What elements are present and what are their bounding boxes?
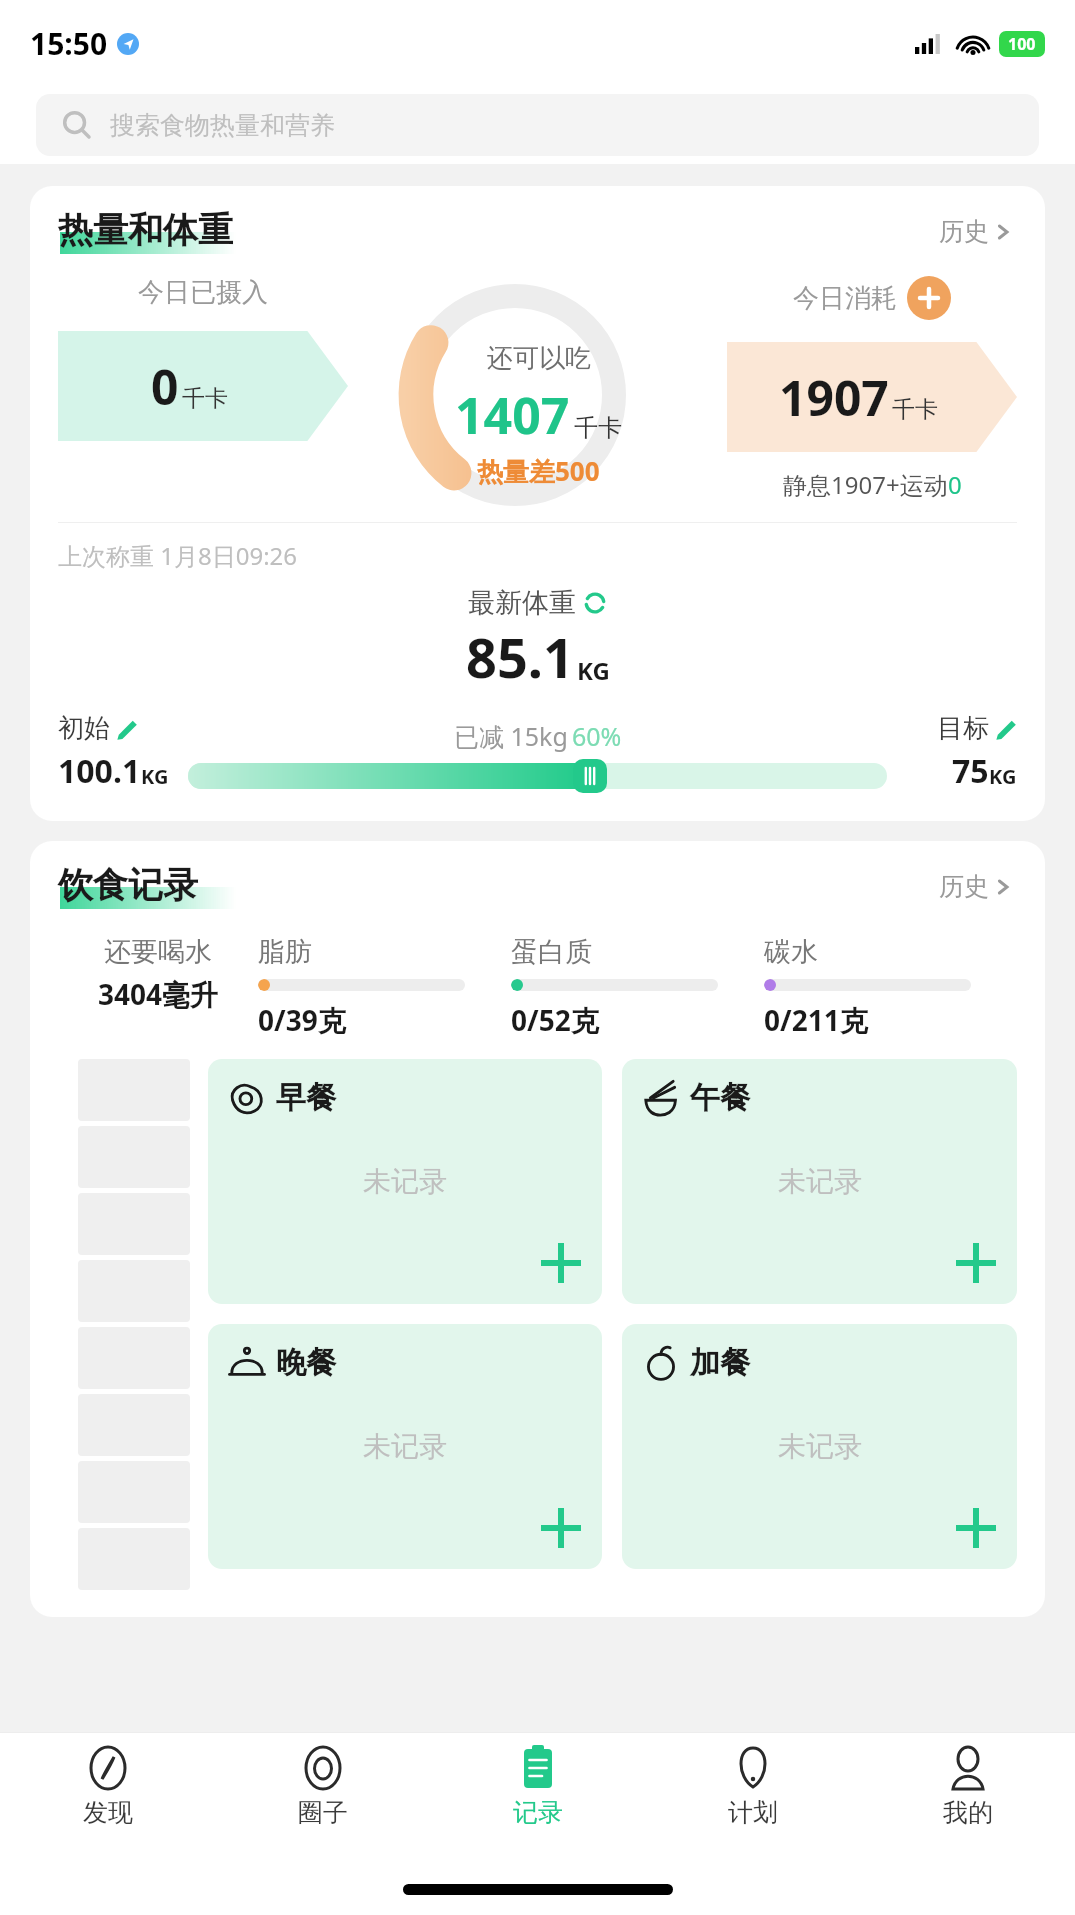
staticText: 目标 <box>937 712 989 745</box>
staticText: KG <box>989 763 1017 790</box>
button[interactable]: 添加消耗 <box>907 276 951 320</box>
staticText: 初始 <box>58 712 110 745</box>
staticText: 3404毫升 <box>98 975 219 1013</box>
staticText: 今日消耗 <box>793 282 897 315</box>
button[interactable]: 午餐 <box>622 1059 1017 1304</box>
button[interactable]: 添加午餐 <box>955 1242 997 1284</box>
staticText: 上次称重 1月8日09:26 <box>58 539 298 572</box>
staticText: 千卡 <box>892 395 938 424</box>
staticText: 今日已摄入 <box>138 276 268 309</box>
staticText: 饮食记录 <box>58 863 198 907</box>
other: 编辑 <box>993 717 1017 741</box>
button[interactable]: 记录 <box>430 1733 645 1863</box>
staticText: 15:50 <box>30 23 108 64</box>
staticText: 碳水 <box>764 935 818 969</box>
staticText: 0 <box>151 354 179 419</box>
staticText: 午餐 <box>690 1079 750 1117</box>
staticText: 计划 <box>728 1797 778 1828</box>
staticText: 还可以吃 <box>487 342 591 375</box>
staticText: 100 <box>1008 33 1036 55</box>
staticText: 未记录 <box>363 1164 447 1199</box>
staticText: 1907 <box>779 365 889 430</box>
staticText: 未记录 <box>778 1164 862 1199</box>
staticText: 最新体重 <box>468 586 576 620</box>
staticText: 圈子 <box>298 1797 348 1828</box>
staticText: 未记录 <box>778 1429 862 1464</box>
staticText: 热量差500 <box>477 453 600 489</box>
staticText: 发现 <box>83 1797 133 1828</box>
staticText: 蛋白质 <box>511 935 592 969</box>
button[interactable]: 历史 <box>935 867 1017 906</box>
staticText: 1407 <box>455 381 570 449</box>
staticText: 已减 15kg <box>454 719 568 753</box>
staticText: 脂肪 <box>258 935 312 969</box>
staticText: 60% <box>572 719 622 753</box>
button[interactable]: 圈子 <box>215 1733 430 1863</box>
button[interactable]: 晚餐 <box>208 1324 602 1569</box>
button[interactable]: 添加晚餐 <box>540 1507 582 1549</box>
button[interactable]: 发现 <box>0 1733 215 1863</box>
staticText: 记录 <box>513 1797 563 1828</box>
staticText: 75 <box>952 749 989 793</box>
staticText: 搜索食物热量和营养 <box>110 110 335 141</box>
staticText: 加餐 <box>690 1344 750 1382</box>
staticText: 0/39克 <box>258 1001 346 1039</box>
staticText: KG <box>141 763 169 790</box>
staticText: 千卡 <box>182 384 228 413</box>
staticText: 还要喝水 <box>104 935 212 969</box>
staticText: 85.1 <box>466 620 574 694</box>
staticText: 历史 <box>939 871 989 902</box>
staticText: 0/52克 <box>511 1001 599 1039</box>
staticText: 晚餐 <box>276 1344 336 1382</box>
button[interactable]: 搜索食物热量和营养 <box>36 94 1039 156</box>
button[interactable]: 计划 <box>645 1733 860 1863</box>
button[interactable]: 早餐 <box>208 1059 602 1304</box>
button[interactable]: 历史 <box>935 212 1017 251</box>
staticText: 100.1 <box>58 749 141 793</box>
button[interactable]: 添加早餐 <box>540 1242 582 1284</box>
button[interactable]: 加餐 <box>622 1324 1017 1569</box>
staticText: 我的 <box>943 1797 993 1828</box>
other: 编辑 <box>114 717 138 741</box>
staticText: 千卡 <box>574 413 622 443</box>
staticText: 热量和体重 <box>58 208 233 252</box>
button[interactable]: 添加加餐 <box>955 1507 997 1549</box>
staticText: 未记录 <box>363 1429 447 1464</box>
staticText: 0/211克 <box>764 1001 868 1039</box>
button[interactable]: 1907 <box>727 342 1017 452</box>
button[interactable]: 0 <box>58 331 348 441</box>
staticText: 历史 <box>939 216 989 247</box>
staticText: KG <box>577 654 610 687</box>
other: 刷新体重 <box>582 590 608 616</box>
staticText: 早餐 <box>276 1079 336 1117</box>
staticText: 静息1907+运动 <box>783 468 948 501</box>
staticText: 0 <box>948 468 962 501</box>
button[interactable]: 我的 <box>860 1733 1075 1863</box>
